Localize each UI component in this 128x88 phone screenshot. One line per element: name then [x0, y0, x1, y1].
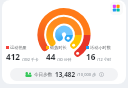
button[interactable]: Open app: [2, 0, 126, 84]
staticText: 今日步数: [34, 72, 53, 78]
button[interactable]: Info: [99, 72, 104, 77]
staticText: 活动小时数: [90, 45, 111, 50]
button[interactable]: 活动小时数: [84, 45, 124, 62]
staticText: 412: [6, 51, 21, 62]
staticText: /392 千卡: [22, 57, 39, 62]
button[interactable]: 运动热量: [4, 45, 44, 62]
button[interactable]: Open app: [110, 2, 123, 15]
staticText: 16: [86, 51, 96, 62]
button[interactable]: 今日步数: [10, 68, 118, 81]
button[interactable]: 锻炼时长: [44, 45, 84, 62]
staticText: /10,000 步: [77, 72, 97, 77]
staticText: /30 分钟: [57, 57, 72, 62]
staticText: 13,482: [55, 70, 76, 79]
staticText: 锻炼时长: [50, 45, 67, 50]
staticText: /12 小时: [97, 57, 112, 62]
staticText: 44: [46, 51, 56, 62]
staticText: 运动热量: [10, 45, 27, 50]
